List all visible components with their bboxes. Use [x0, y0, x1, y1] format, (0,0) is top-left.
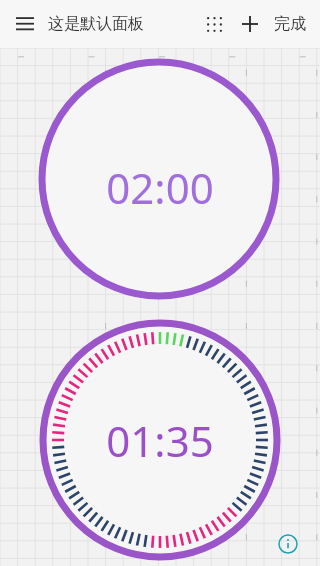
staticText: 这是默认面板 — [48, 14, 144, 34]
button[interactable]: 01:35 — [43, 410, 277, 470]
button[interactable]: Grid view — [198, 8, 230, 40]
staticText: 02:00 — [106, 159, 214, 216]
button[interactable]: 完成 — [274, 14, 306, 34]
button[interactable]: Add — [234, 8, 266, 40]
button[interactable]: Menu — [10, 9, 40, 39]
button[interactable]: Info — [274, 530, 302, 558]
button[interactable]: 02:00 — [43, 157, 277, 217]
staticText: 完成 — [274, 14, 306, 34]
staticText: 01:35 — [106, 412, 214, 469]
